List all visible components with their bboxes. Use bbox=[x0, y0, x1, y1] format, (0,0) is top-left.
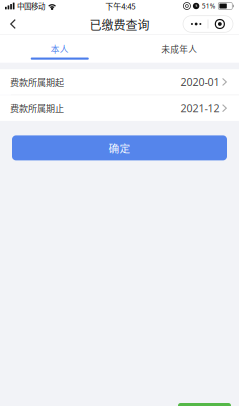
staticText: 未成年人 bbox=[161, 43, 197, 55]
button[interactable]: 费款所属期起 bbox=[0, 69, 239, 95]
staticText: 确定 bbox=[108, 140, 130, 156]
staticText: 中国移动 bbox=[17, 1, 45, 11]
button[interactable]: 返回 bbox=[0, 14, 26, 34]
staticText: 51% bbox=[202, 2, 216, 10]
button[interactable]: 更多 bbox=[185, 15, 208, 32]
staticText: 下午4:45 bbox=[105, 0, 135, 12]
staticText: 费款所属期止 bbox=[10, 102, 64, 115]
button[interactable]: 未成年人 bbox=[119, 35, 239, 63]
staticText: 2020-01 bbox=[180, 75, 219, 89]
staticText: 费款所属期起 bbox=[10, 75, 64, 88]
staticText: 已缴费查询 bbox=[89, 16, 149, 33]
button[interactable]: 关闭 bbox=[208, 15, 231, 32]
staticText: 本人 bbox=[51, 43, 69, 55]
button[interactable]: 本人 bbox=[0, 35, 119, 63]
button[interactable]: 费款所属期止 bbox=[0, 95, 239, 121]
staticText: 2021-12 bbox=[180, 101, 219, 115]
button[interactable]: 确定 bbox=[12, 135, 227, 160]
